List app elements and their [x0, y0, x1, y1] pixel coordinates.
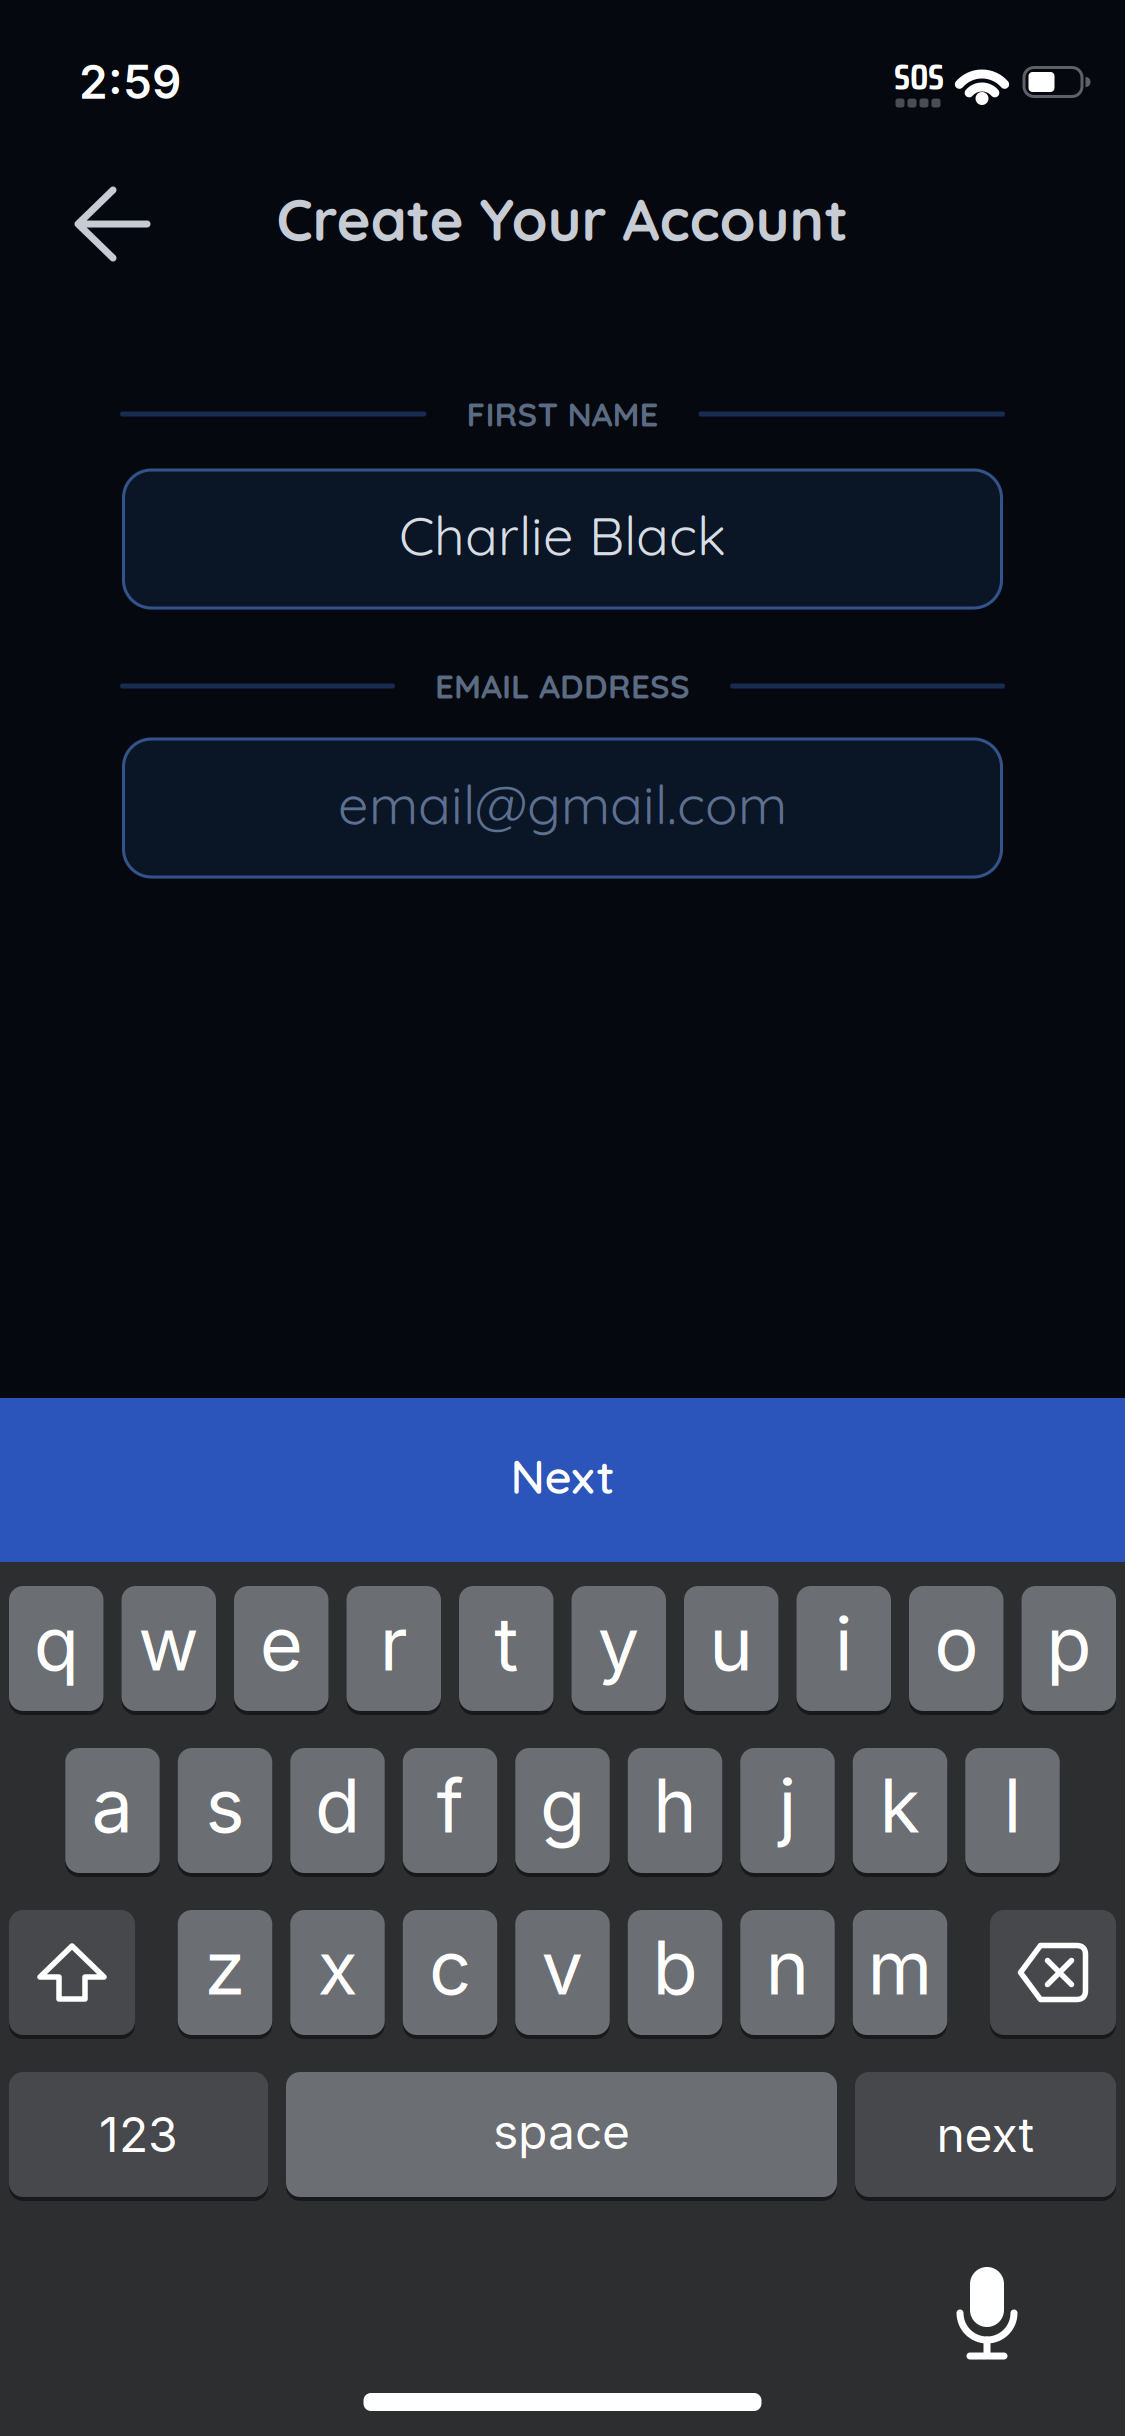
- button[interactable]: u: [684, 1586, 778, 1711]
- button[interactable]: j: [740, 1748, 835, 1873]
- staticText: email@gmail.com: [338, 770, 787, 838]
- staticText: z: [204, 1923, 245, 2012]
- staticText: y: [598, 1599, 640, 1688]
- button[interactable]: h: [628, 1748, 722, 1873]
- staticText: t: [494, 1599, 518, 1688]
- button[interactable]: [73, 189, 151, 259]
- staticText: next: [936, 2105, 1034, 2164]
- staticText: 123: [99, 2105, 178, 2164]
- staticText: e: [260, 1599, 303, 1688]
- button[interactable]: 123: [9, 2072, 268, 2197]
- staticText: c: [429, 1923, 471, 2012]
- button[interactable]: b: [628, 1910, 722, 2035]
- button[interactable]: email@gmail.com: [122, 737, 1003, 878]
- button[interactable]: [958, 2267, 1016, 2359]
- button[interactable]: [990, 1910, 1116, 2035]
- button[interactable]: m: [853, 1910, 947, 2035]
- button[interactable]: Charlie Black: [122, 468, 1003, 609]
- staticText: m: [867, 1923, 932, 2012]
- button[interactable]: [9, 1910, 135, 2035]
- button[interactable]: w: [121, 1586, 216, 1711]
- button[interactable]: l: [965, 1748, 1060, 1873]
- staticText: a: [91, 1761, 133, 1850]
- button[interactable]: r: [346, 1586, 441, 1711]
- button[interactable]: q: [9, 1586, 103, 1711]
- button[interactable]: s: [178, 1748, 272, 1873]
- staticText: 2:59: [79, 54, 181, 110]
- button[interactable]: Next: [0, 1398, 1125, 1562]
- button[interactable]: f: [403, 1748, 497, 1873]
- button[interactable]: i: [796, 1586, 891, 1711]
- staticText: f: [436, 1761, 463, 1850]
- staticText: FIRST NAME: [466, 393, 658, 435]
- staticText: EMAIL ADDRESS: [435, 665, 690, 707]
- staticText: space: [493, 2102, 630, 2161]
- button[interactable]: o: [909, 1586, 1003, 1711]
- button[interactable]: x: [290, 1910, 385, 2035]
- staticText: h: [653, 1761, 697, 1850]
- staticText: p: [1046, 1599, 1091, 1688]
- button[interactable]: z: [178, 1910, 272, 2035]
- button[interactable]: k: [853, 1748, 947, 1873]
- staticText: n: [765, 1923, 809, 2012]
- button[interactable]: t: [459, 1586, 553, 1711]
- button[interactable]: space: [286, 2072, 837, 2197]
- staticText: x: [317, 1923, 357, 2012]
- staticText: r: [380, 1599, 408, 1688]
- button[interactable]: next: [855, 2072, 1116, 2197]
- button[interactable]: v: [515, 1910, 610, 2035]
- button[interactable]: e: [234, 1586, 328, 1711]
- staticText: i: [835, 1599, 853, 1688]
- staticText: v: [541, 1923, 583, 2012]
- staticText: w: [138, 1599, 199, 1688]
- button[interactable]: a: [65, 1748, 160, 1873]
- button[interactable]: p: [1021, 1586, 1116, 1711]
- staticText: Create Your Account: [276, 183, 848, 255]
- button[interactable]: g: [515, 1748, 610, 1873]
- staticText: Charlie Black: [399, 501, 726, 569]
- staticText: SOS: [894, 49, 944, 105]
- button[interactable]: d: [290, 1748, 385, 1873]
- staticText: u: [709, 1599, 753, 1688]
- staticText: l: [1003, 1761, 1021, 1850]
- staticText: k: [879, 1761, 920, 1850]
- staticText: d: [315, 1761, 360, 1850]
- staticText: Next: [510, 1447, 614, 1505]
- staticText: b: [652, 1923, 697, 2012]
- staticText: s: [205, 1761, 244, 1850]
- button[interactable]: n: [740, 1910, 835, 2035]
- staticText: j: [778, 1761, 796, 1850]
- staticText: q: [34, 1599, 79, 1688]
- staticText: o: [934, 1599, 978, 1688]
- button[interactable]: c: [403, 1910, 497, 2035]
- staticText: g: [540, 1761, 585, 1850]
- button[interactable]: y: [571, 1586, 666, 1711]
